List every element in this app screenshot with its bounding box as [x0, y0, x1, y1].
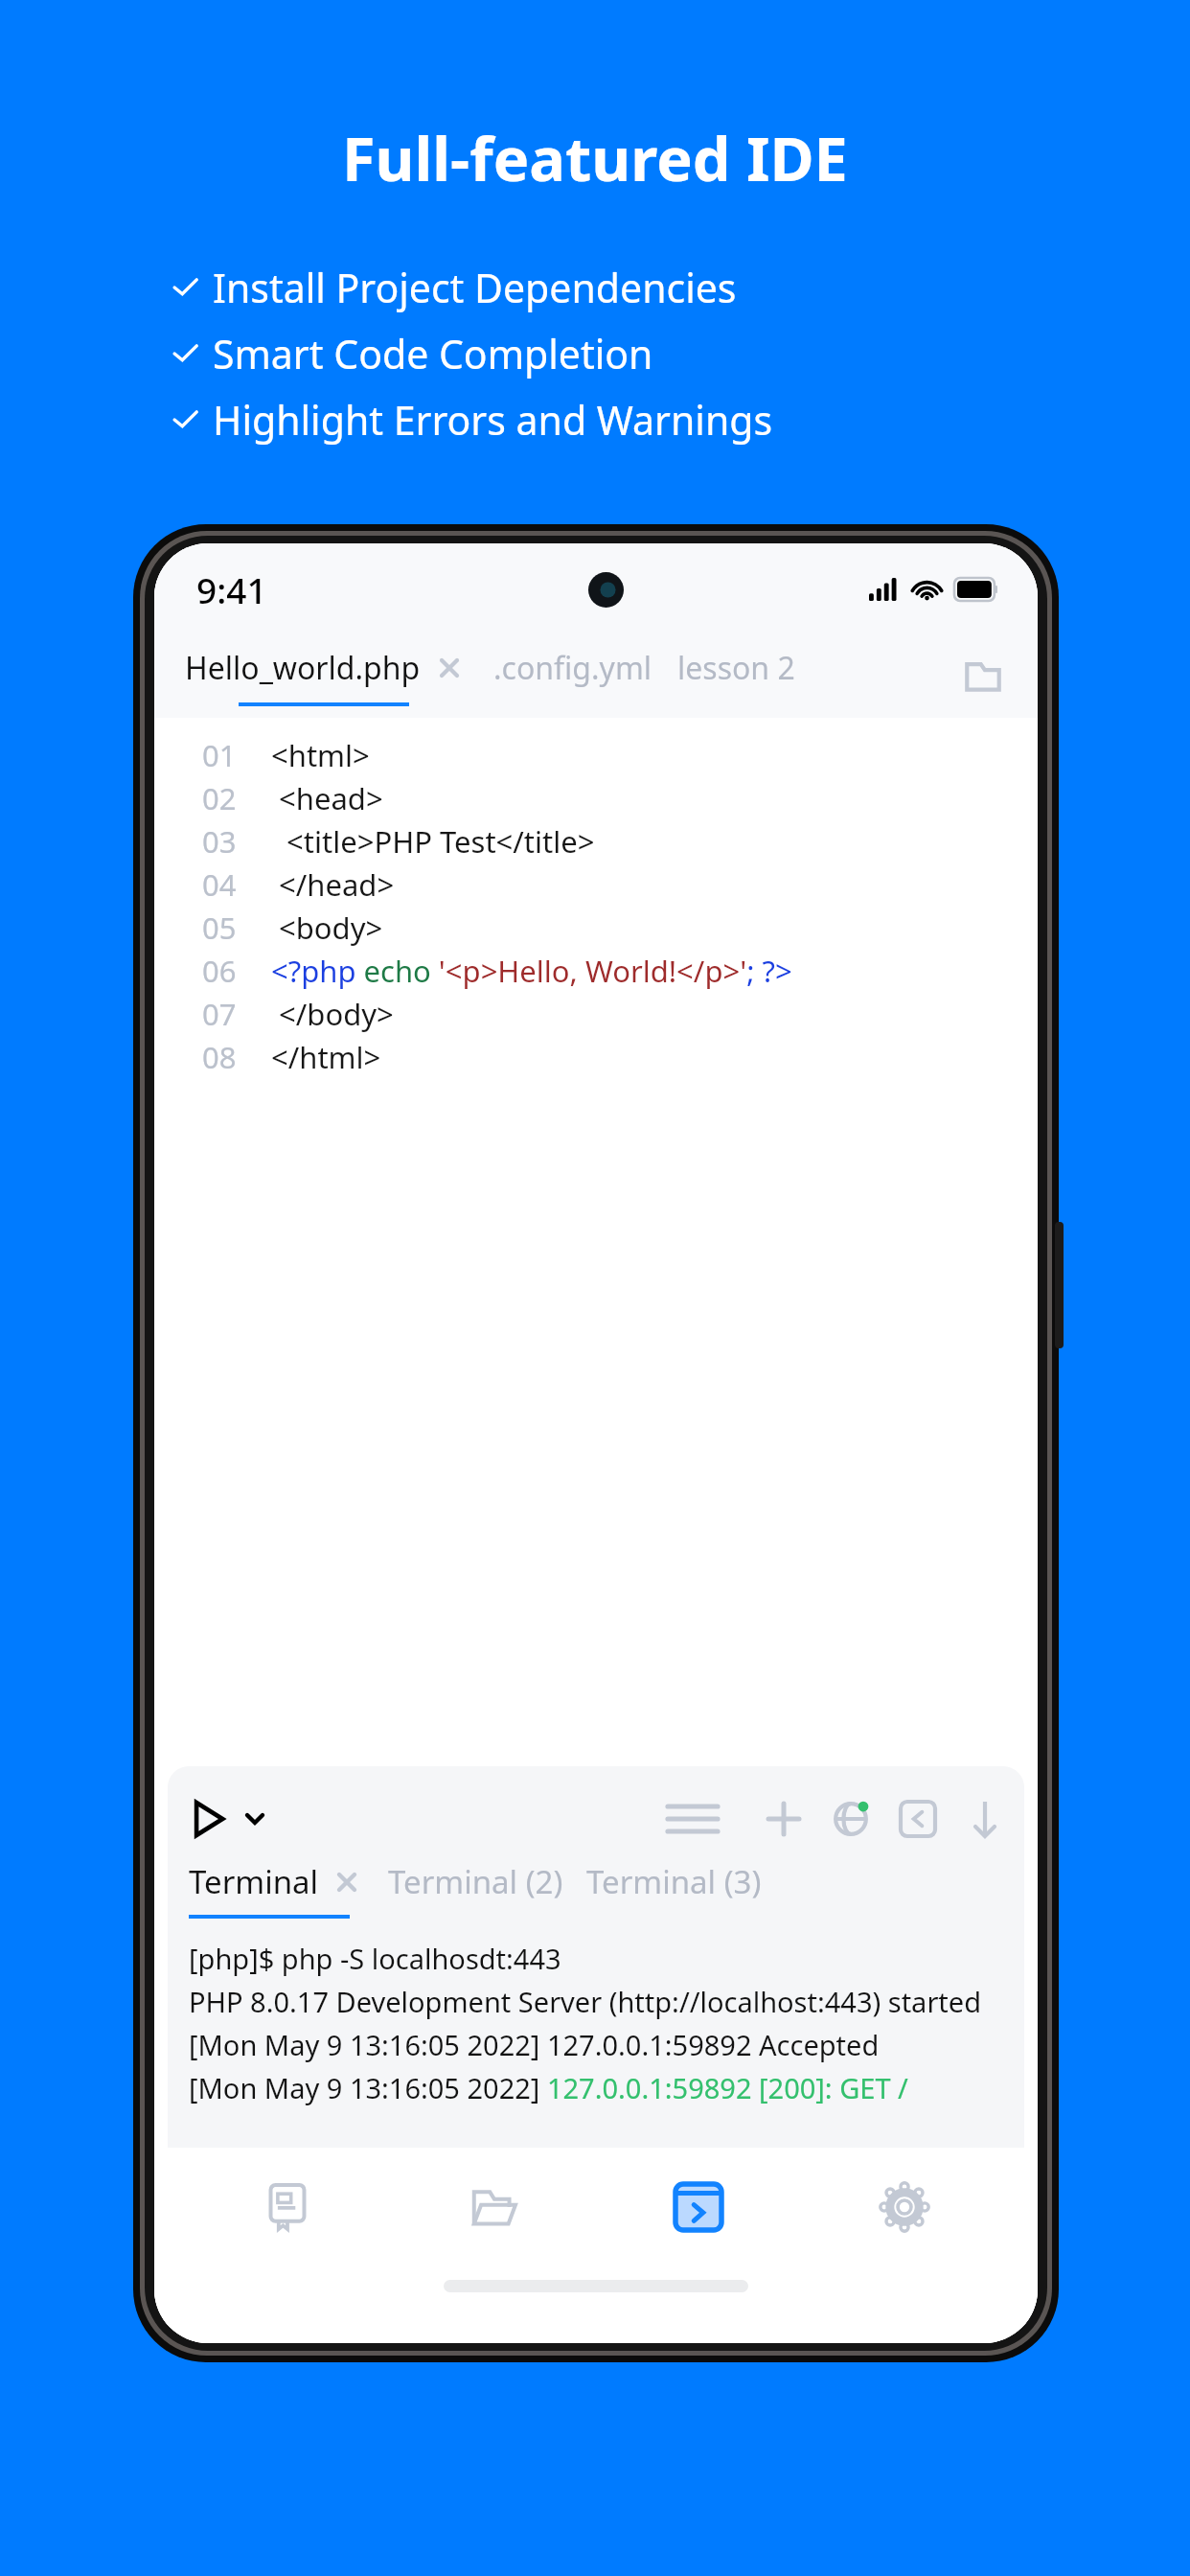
staticText: 9:41 — [196, 565, 267, 613]
staticText: 07 — [202, 994, 237, 1034]
button[interactable]: lesson 2 — [677, 655, 795, 698]
staticText: Install Project Dependencies — [213, 261, 737, 314]
button[interactable]: Close tab — [436, 655, 463, 681]
staticText: </head> — [271, 864, 395, 905]
button[interactable]: Files — [422, 2148, 565, 2266]
button[interactable]: Server — [829, 1797, 873, 1841]
button[interactable]: Scroll to end — [963, 1797, 1007, 1841]
staticText: <head> — [271, 778, 383, 818]
staticText: <body> — [271, 908, 383, 948]
staticText: 05 — [202, 908, 237, 948]
button[interactable]: Terminal (2) — [388, 1868, 563, 1911]
button[interactable]: Close terminal — [334, 1870, 359, 1895]
button[interactable]: Editor — [216, 2148, 359, 2266]
staticText: [Mon May 9 13:16:05 2022] 127.0.0.1:5989… — [189, 2069, 908, 2106]
button[interactable]: Console — [896, 1797, 940, 1841]
staticText: 03 — [202, 821, 237, 862]
staticText: </html> — [271, 1037, 381, 1077]
button[interactable]: Run configurations — [240, 1805, 269, 1833]
button[interactable]: Terminal — [189, 1860, 359, 1919]
button[interactable]: New terminal — [762, 1797, 806, 1841]
staticText: 04 — [202, 864, 237, 905]
button[interactable]: .config.yml — [493, 655, 652, 698]
button[interactable]: Files — [961, 655, 1005, 699]
staticText: <title>PHP Test</title> — [271, 821, 595, 862]
staticText: 01 — [202, 735, 237, 775]
button[interactable]: Hello_world.php — [185, 647, 463, 706]
button[interactable]: Settings — [833, 2148, 976, 2266]
staticText: 02 — [202, 778, 237, 818]
staticText: [Mon May 9 13:16:05 2022] 127.0.0.1:5989… — [189, 2026, 880, 2063]
button[interactable]: Terminal — [627, 2148, 770, 2266]
button[interactable]: Run — [185, 1795, 233, 1843]
staticText: 06 — [202, 951, 237, 991]
staticText: Full-featured IDE — [342, 117, 848, 199]
staticText: Highlight Errors and Warnings — [213, 393, 773, 447]
staticText: Terminal — [189, 1860, 319, 1903]
button[interactable]: Menu — [666, 1798, 720, 1840]
staticText: PHP 8.0.17 Development Server (http://lo… — [189, 1983, 982, 2020]
button[interactable]: Terminal (3) — [586, 1868, 762, 1911]
staticText: Smart Code Completion — [213, 327, 653, 380]
staticText: Hello_world.php — [185, 647, 421, 689]
staticText: </body> — [271, 994, 394, 1034]
staticText: [php]$ php -S localhosdt:443 — [189, 1940, 561, 1977]
staticText: <?php echo '<p>Hello, World!</p>'; ?> — [271, 951, 792, 991]
staticText: 08 — [202, 1037, 237, 1077]
staticText: <html> — [271, 735, 370, 775]
